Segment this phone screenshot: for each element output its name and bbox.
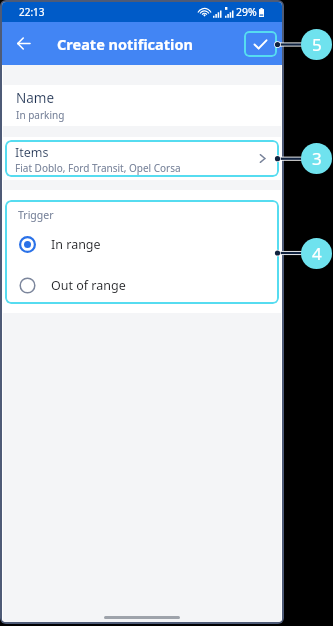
button[interactable]: Name [2,85,282,126]
button[interactable]: Out of range [18,273,279,297]
button[interactable]: In range [18,232,279,256]
staticText: 3 [312,147,322,170]
staticText: 4 [312,242,322,265]
staticText: 29% [236,5,257,19]
staticText: Items [15,144,49,161]
staticText: Trigger [18,208,54,222]
button[interactable]: Items [5,140,279,177]
staticText: Create notification [57,34,193,54]
staticText: Name [16,89,55,107]
staticText: 22:13 [19,5,45,19]
button[interactable]: Save [244,31,277,57]
staticText: 5 [312,33,322,56]
staticText: In range [51,236,101,253]
staticText: In parking [16,108,65,122]
staticText: Out of range [51,277,126,294]
button[interactable]: Back [11,31,36,56]
staticText: Fiat Doblo, Ford Transit, Opel Corsa [15,161,181,175]
